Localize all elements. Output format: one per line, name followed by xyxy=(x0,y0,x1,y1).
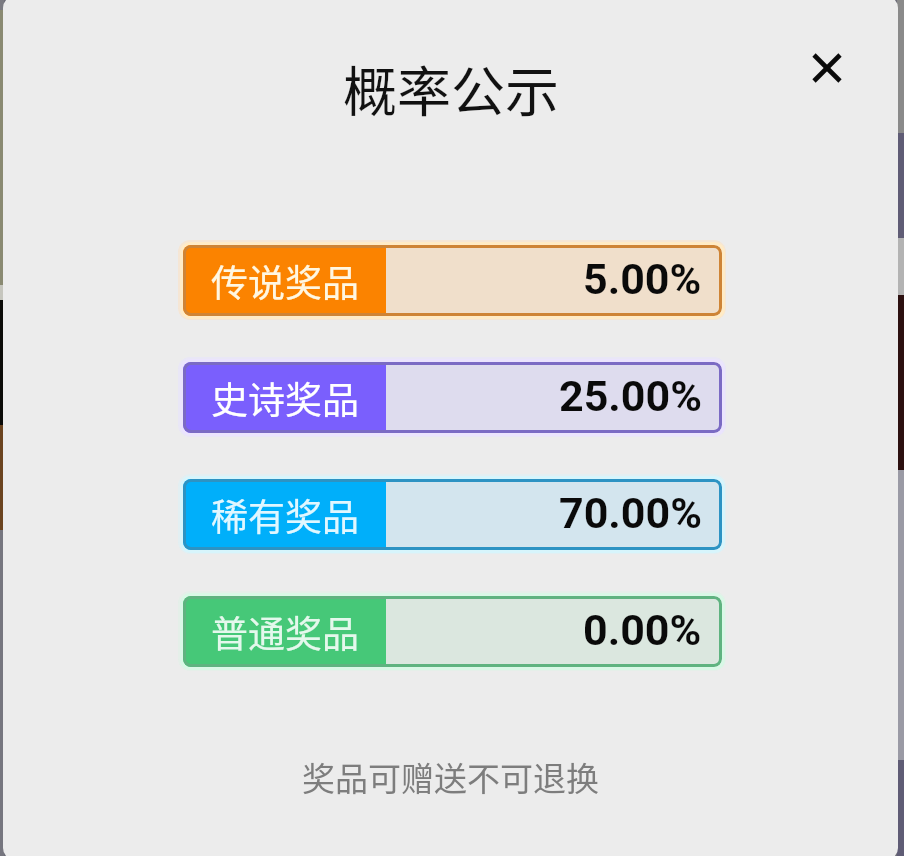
button[interactable]: 稀有奖品 xyxy=(178,474,726,554)
button[interactable]: Close xyxy=(793,34,861,102)
staticText: 普通奖品 xyxy=(211,605,359,659)
staticText: 70.00% xyxy=(559,488,702,538)
button[interactable]: 史诗奖品 xyxy=(178,357,726,437)
staticText: 史诗奖品 xyxy=(211,371,359,425)
staticText: 5.00% xyxy=(583,254,702,304)
staticText: 传说奖品 xyxy=(211,254,359,308)
staticText: 概率公示 xyxy=(343,49,559,127)
button[interactable]: 传说奖品 xyxy=(178,240,726,320)
staticText: 奖品可赠送不可退换 xyxy=(302,753,599,801)
staticText: 25.00% xyxy=(559,371,702,421)
staticText: 0.00% xyxy=(583,605,702,655)
button[interactable]: 普通奖品 xyxy=(178,591,726,671)
staticText: 稀有奖品 xyxy=(211,488,359,542)
